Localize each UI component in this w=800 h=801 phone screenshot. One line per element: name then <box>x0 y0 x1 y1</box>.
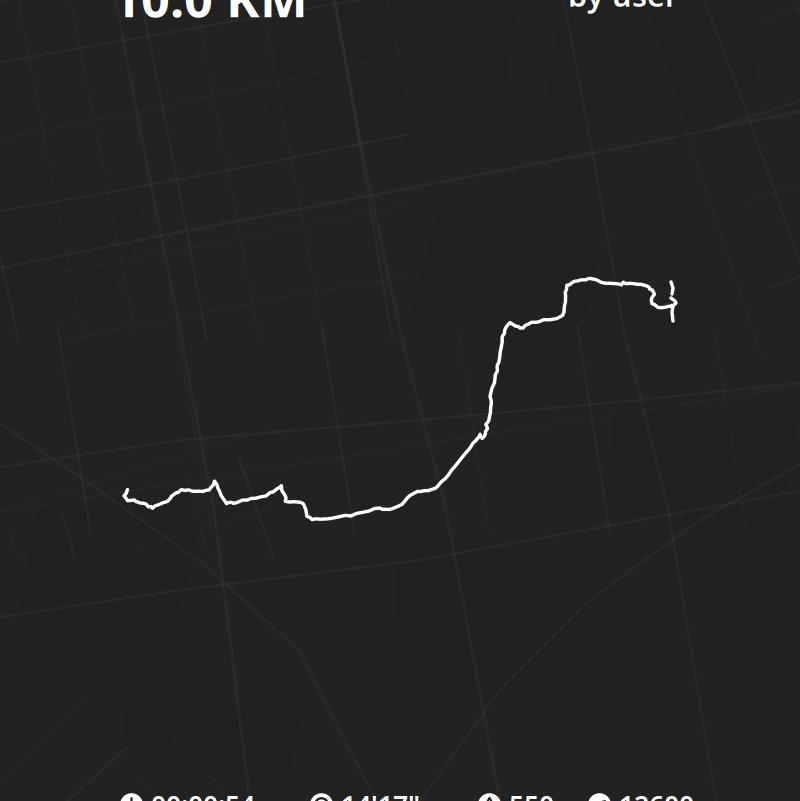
button[interactable]: 00:00:54 <box>120 787 255 801</box>
staticText: 14'17" <box>341 787 420 801</box>
button[interactable]: 550 <box>478 787 554 801</box>
staticText: 550 <box>509 787 554 801</box>
staticText: 00:00:54 <box>151 787 255 801</box>
button[interactable]: 14'17" <box>310 787 420 801</box>
staticText: by user <box>568 0 678 15</box>
button[interactable]: 12600 <box>588 787 694 801</box>
staticText: 10.0 KM <box>112 0 308 31</box>
staticText: 12600 <box>619 787 694 801</box>
